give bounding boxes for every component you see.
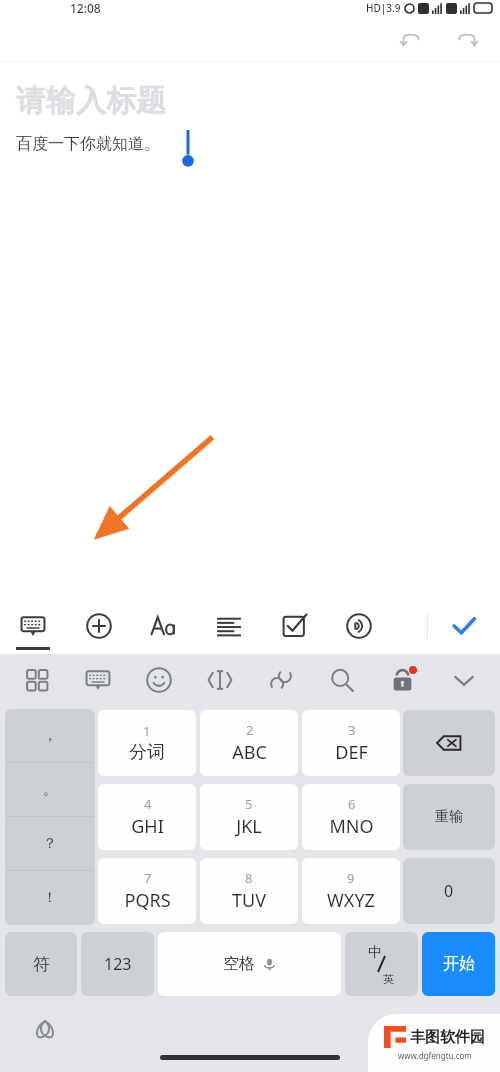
staticText: ？ [43,835,57,853]
staticText: 123 [104,953,132,975]
staticText: DEF [335,740,368,765]
button[interactable]: ！ [5,871,95,925]
button[interactable]: 6 [302,784,400,850]
staticText: www.dgfengtu.com [398,1050,472,1061]
button[interactable]: 123 [81,932,154,996]
button[interactable]: Undo [396,24,426,54]
staticText: 5 [245,795,253,813]
staticText: 7 [144,869,152,887]
staticText: 12:08 [70,0,101,16]
button[interactable]: Apps [6,654,67,706]
button[interactable]: 空格 [158,932,341,996]
button[interactable]: Checklist [261,598,326,654]
button[interactable]: Clipboard [250,654,311,706]
staticText: ABC [232,740,267,765]
staticText: 4 [144,795,152,813]
button[interactable]: 符 [5,932,77,996]
staticText: 1 [143,722,151,740]
button[interactable]: Voice [326,598,391,654]
button[interactable]: 4 [98,784,196,850]
button[interactable]: 9 [302,858,400,924]
staticText: 3 [348,721,356,739]
button[interactable]: Input method [30,1015,60,1045]
button[interactable]: Cursor [189,654,250,706]
staticText: MNO [329,814,374,839]
staticText: 重输 [435,808,463,826]
button[interactable]: 0 [403,858,495,924]
button[interactable]: 7 [98,858,196,924]
staticText: ， [43,727,57,745]
staticText: ！ [43,889,57,907]
button[interactable]: Collapse [433,654,494,706]
button[interactable]: 2 [200,710,298,776]
staticText: 中 [368,944,382,962]
staticText: 空格 [223,954,255,974]
staticText: 符 [33,954,50,975]
button[interactable]: 5 [200,784,298,850]
button[interactable]: Backspace [403,710,495,776]
button[interactable]: 重输 [403,784,495,850]
staticText: GHI [131,814,164,839]
button[interactable]: Done [428,598,500,654]
button[interactable]: 3 [302,710,400,776]
button[interactable]: Search [311,654,372,706]
button[interactable]: Keyboard layout [67,654,128,706]
staticText: WXYZ [327,888,375,913]
staticText: 9 [347,869,355,887]
staticText: TUV [232,888,266,913]
staticText: HD|3.9 [366,1,401,15]
button[interactable]: Insert [66,598,131,654]
staticText: 开始 [443,954,475,974]
button[interactable]: Emoji [128,654,189,706]
button[interactable]: 开始 [422,932,495,996]
button[interactable]: 中 [345,932,418,996]
button[interactable]: Align [196,598,261,654]
staticText: 英 [383,972,394,986]
staticText: JKL [236,814,262,839]
staticText: 。 [43,781,57,799]
button[interactable]: Privacy [372,654,433,706]
staticText: 分词 [129,741,165,764]
button[interactable]: Redo [452,24,482,54]
staticText: PQRS [124,888,171,913]
staticText: 百度一下你就知道。 [16,134,160,154]
button[interactable]: ， [5,709,95,763]
button[interactable]: 8 [200,858,298,924]
button[interactable]: Keyboard [0,598,66,654]
button[interactable]: ？ [5,817,95,871]
button[interactable]: 1 [98,710,196,776]
button[interactable]: Text style [131,598,196,654]
staticText: 6 [348,795,356,813]
staticText: 请输入标题 [16,82,166,120]
staticText: 丰图软件园 [410,1028,485,1047]
staticText: 8 [245,869,253,887]
staticText: 2 [246,721,254,739]
staticText: 0 [444,880,454,902]
